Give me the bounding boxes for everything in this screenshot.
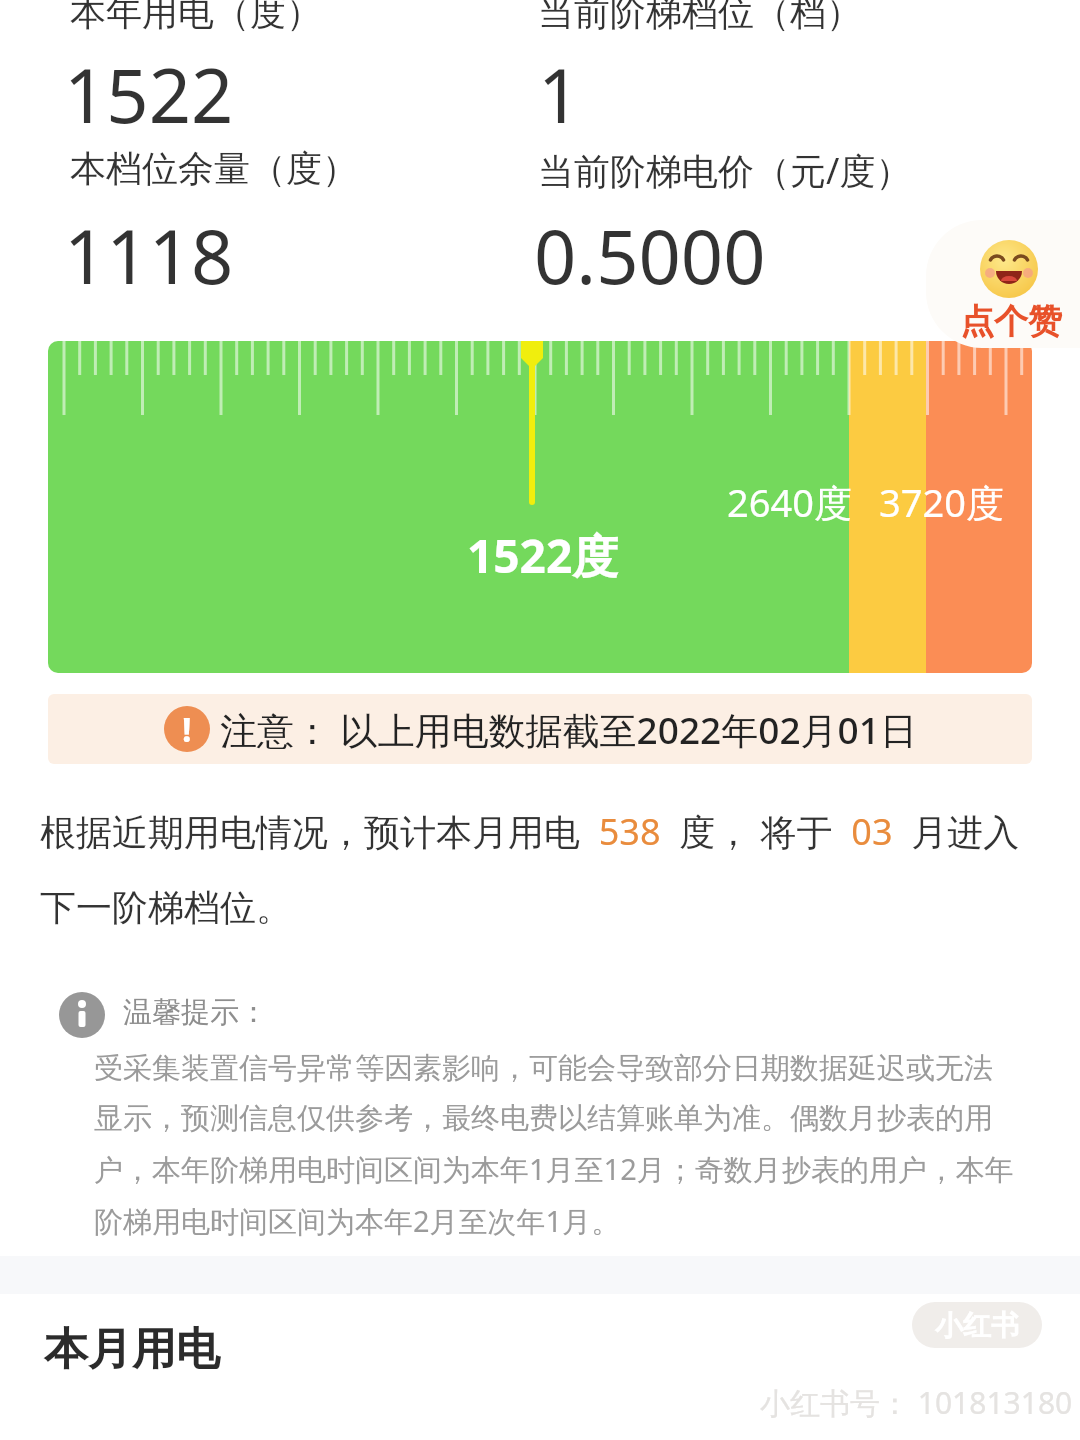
staticText: 当前阶梯电价（元/度） bbox=[538, 146, 912, 195]
staticText: 1522度 bbox=[467, 524, 619, 587]
staticText: 本年用电（度） bbox=[70, 0, 322, 35]
staticText: 本档位余量（度） bbox=[70, 146, 358, 191]
staticText: ! bbox=[182, 706, 192, 752]
staticText: 1522 bbox=[64, 44, 234, 145]
staticText: 注意： 以上用电数据截至2022年02月01日 bbox=[220, 704, 917, 755]
staticText: 1118 bbox=[64, 205, 234, 306]
staticText: 2640度 bbox=[727, 476, 852, 528]
staticText: 温馨提示： bbox=[123, 994, 268, 1031]
staticText: 当前阶梯档位（档） bbox=[538, 0, 862, 35]
staticText: 3720度 bbox=[879, 476, 1004, 528]
staticText: 点个赞 bbox=[960, 300, 1062, 343]
staticText: 受采集装置信号异常等因素影响，可能会导致部分日期数据延迟或无法 显示，预测信息仅… bbox=[94, 1050, 1014, 1241]
staticText: 本月用电 bbox=[44, 1322, 220, 1377]
staticText: 0.5000 bbox=[534, 205, 766, 306]
staticText: 小红书号： 101813180 bbox=[760, 1382, 1073, 1423]
staticText: 1 bbox=[538, 44, 581, 145]
button[interactable] bbox=[48, 341, 1032, 673]
button[interactable]: ! bbox=[48, 694, 1032, 764]
button[interactable]: 点个赞 bbox=[926, 220, 1080, 348]
staticText: 小红书 bbox=[935, 1308, 1019, 1343]
staticText: 根据近期用电情况，预计本月用电 538 度， 将于 03 月进入 下一阶梯档位。 bbox=[40, 807, 1020, 931]
